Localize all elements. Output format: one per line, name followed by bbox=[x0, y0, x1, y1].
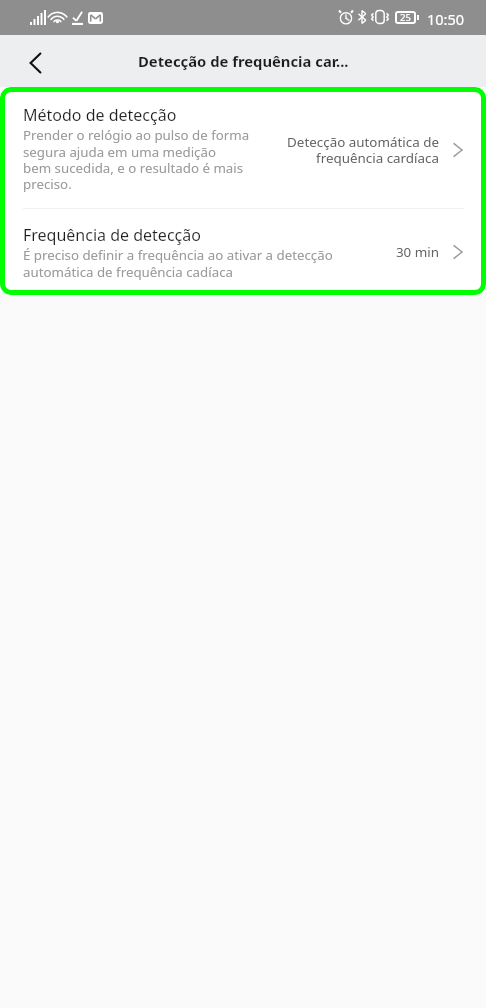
staticText: É preciso definir a frequência ao ativar… bbox=[23, 246, 333, 281]
staticText: 30 min bbox=[379, 243, 439, 261]
staticText: 25 bbox=[400, 11, 411, 24]
button[interactable]: Back bbox=[6, 38, 64, 87]
button[interactable]: Método de detecção bbox=[5, 92, 481, 208]
staticText: Método de detecção bbox=[23, 104, 177, 126]
staticText: Prender o relógio ao pulso de forma segu… bbox=[23, 126, 250, 193]
staticText: Detecção automática de frequência cardía… bbox=[274, 133, 439, 167]
staticText: Detecção de frequência car... bbox=[138, 51, 349, 71]
staticText: Frequência de detecção bbox=[23, 224, 201, 246]
button[interactable]: Frequência de detecção bbox=[5, 209, 481, 290]
staticText: 10:50 bbox=[427, 9, 465, 29]
